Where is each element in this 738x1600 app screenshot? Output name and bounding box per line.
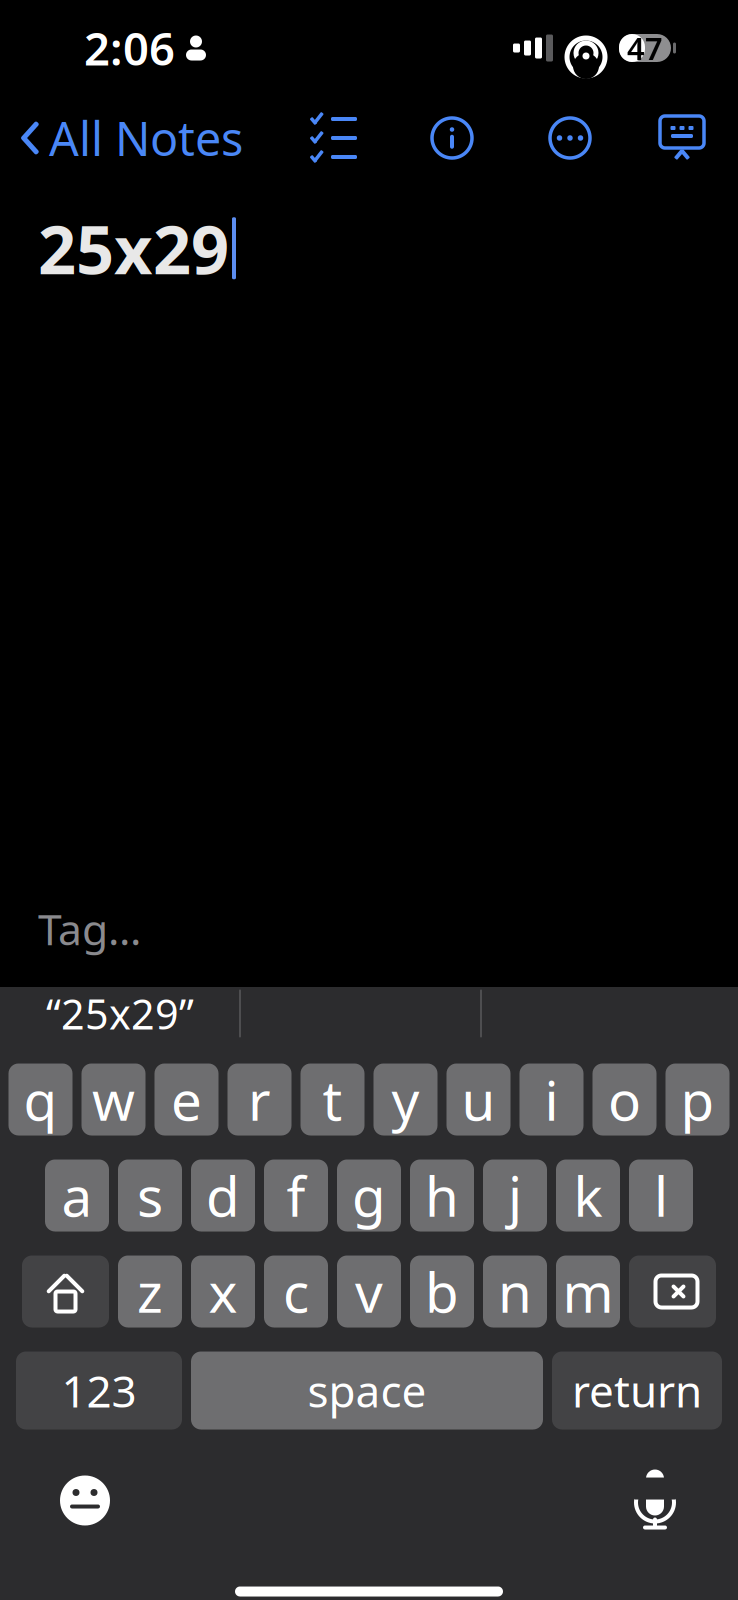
staticText: “25x29” — [46, 986, 194, 1041]
staticText: z — [137, 1255, 163, 1328]
staticText: h — [425, 1159, 459, 1232]
staticText: y — [391, 1063, 419, 1136]
staticText: b — [425, 1255, 459, 1328]
staticText: r — [248, 1063, 271, 1136]
staticText: t — [322, 1063, 342, 1136]
staticText: 25x29 — [38, 204, 229, 292]
button[interactable]: q — [8, 1063, 72, 1135]
staticText: l — [654, 1159, 668, 1232]
button[interactable]: o — [592, 1063, 656, 1135]
button[interactable]: e — [154, 1063, 218, 1135]
button[interactable]: h — [410, 1159, 474, 1231]
staticText: k — [573, 1159, 602, 1232]
button[interactable]: p — [665, 1063, 729, 1135]
staticText: All Notes — [49, 107, 243, 169]
button[interactable]: j — [483, 1159, 547, 1231]
staticText: i — [544, 1063, 558, 1136]
staticText: 2:06 — [84, 18, 175, 78]
staticText: m — [562, 1255, 613, 1328]
button[interactable]: f — [264, 1159, 328, 1231]
button[interactable]: s — [118, 1159, 182, 1231]
button[interactable]: Dictation — [614, 1451, 696, 1549]
button[interactable]: Checklist — [296, 110, 372, 166]
staticText: o — [608, 1063, 641, 1136]
staticText: q — [23, 1063, 57, 1136]
button[interactable]: Delete — [629, 1255, 716, 1327]
staticText: d — [206, 1159, 240, 1232]
staticText: Tag... — [38, 900, 141, 957]
button[interactable]: y — [373, 1063, 437, 1135]
button[interactable]: 123 — [16, 1351, 182, 1429]
staticText: s — [137, 1159, 163, 1232]
staticText: a — [61, 1159, 92, 1232]
button[interactable]: l — [629, 1159, 693, 1231]
button[interactable]: x — [191, 1255, 255, 1327]
button[interactable]: i — [519, 1063, 583, 1135]
button[interactable]: space — [191, 1351, 543, 1429]
staticText: 47 — [627, 28, 663, 68]
button[interactable]: n — [483, 1255, 547, 1327]
button[interactable]: c — [264, 1255, 328, 1327]
button[interactable]: t — [300, 1063, 364, 1135]
button[interactable]: Shift — [22, 1255, 109, 1327]
button[interactable]: Info — [414, 106, 490, 170]
staticText: 123 — [61, 1361, 136, 1420]
staticText: f — [286, 1159, 305, 1232]
button[interactable]: b — [410, 1255, 474, 1327]
button[interactable]: d — [191, 1159, 255, 1231]
staticText: u — [461, 1063, 495, 1136]
staticText: n — [498, 1255, 532, 1328]
button[interactable]: return — [552, 1351, 722, 1429]
staticText: w — [92, 1063, 135, 1136]
button[interactable]: z — [118, 1255, 182, 1327]
button[interactable]: All Notes — [0, 97, 243, 179]
staticText: space — [307, 1361, 426, 1420]
staticText: p — [680, 1063, 714, 1136]
staticText: j — [508, 1159, 522, 1232]
staticText: g — [352, 1159, 386, 1232]
staticText: x — [208, 1255, 237, 1328]
button[interactable]: a — [45, 1159, 109, 1231]
button[interactable]: Emoji — [40, 1453, 130, 1547]
button[interactable]: r — [227, 1063, 291, 1135]
button[interactable]: Tag... — [0, 900, 738, 957]
button[interactable]: “25x29” — [0, 978, 240, 1048]
staticText: return — [572, 1361, 702, 1420]
button[interactable]: m — [556, 1255, 620, 1327]
button[interactable]: w — [81, 1063, 145, 1135]
button[interactable]: v — [337, 1255, 401, 1327]
staticText: c — [283, 1255, 309, 1328]
staticText: e — [171, 1063, 202, 1136]
button[interactable]: k — [556, 1159, 620, 1231]
button[interactable]: More — [532, 106, 608, 170]
button[interactable]: u — [446, 1063, 510, 1135]
staticText: v — [355, 1255, 383, 1328]
button[interactable]: Hide Keyboard — [648, 105, 716, 171]
button[interactable]: g — [337, 1159, 401, 1231]
